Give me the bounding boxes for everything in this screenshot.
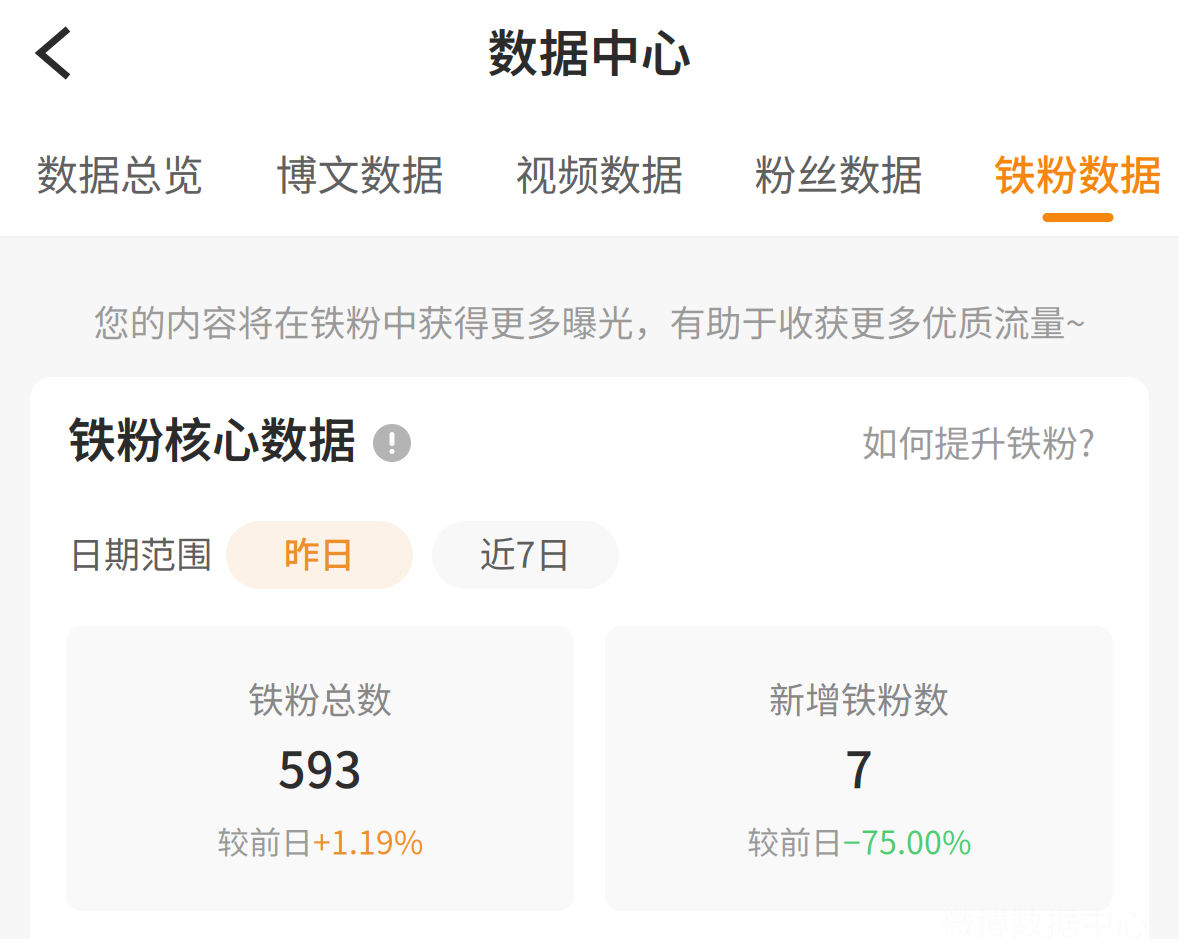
- staticText: 新增铁粉数: [769, 671, 949, 723]
- button[interactable]: 数据总览: [36, 104, 204, 236]
- button[interactable]: 昨日: [226, 521, 413, 589]
- staticText: 您的内容将在铁粉中获得更多曝光，有助于收获更多优质流量~: [93, 294, 1085, 346]
- staticText: 如何提升铁粉?: [862, 415, 1095, 467]
- button[interactable]: 铁粉数据: [994, 104, 1162, 236]
- staticText: 粉丝数据: [754, 142, 922, 203]
- staticText: 昨日: [283, 526, 355, 578]
- staticText: 视频数据: [515, 142, 683, 203]
- staticText: 近7日: [479, 526, 571, 578]
- staticText: 铁粉数据: [994, 142, 1162, 203]
- staticText: −75.00%: [843, 817, 971, 864]
- button[interactable]: 视频数据: [515, 104, 683, 236]
- button[interactable]: 近7日: [432, 521, 619, 589]
- button[interactable]: 如何提升铁粉?: [862, 407, 1095, 467]
- staticText: 593: [278, 732, 362, 802]
- staticText: 铁粉总数: [248, 671, 392, 723]
- staticText: +1.19%: [313, 817, 423, 864]
- staticText: 博文数据: [275, 142, 443, 203]
- staticText: 较前日: [747, 817, 843, 864]
- staticText: 铁粉核心数据: [68, 402, 356, 472]
- button[interactable]: Back: [0, 0, 96, 104]
- button[interactable]: 粉丝数据: [754, 104, 922, 236]
- staticText: 数据总览: [36, 142, 204, 203]
- button[interactable]: 博文数据: [275, 104, 443, 236]
- staticText: 数据中心: [487, 13, 691, 87]
- staticText: 日期范围: [68, 526, 212, 578]
- staticText: 较前日: [217, 817, 313, 864]
- staticText: 7: [845, 732, 873, 802]
